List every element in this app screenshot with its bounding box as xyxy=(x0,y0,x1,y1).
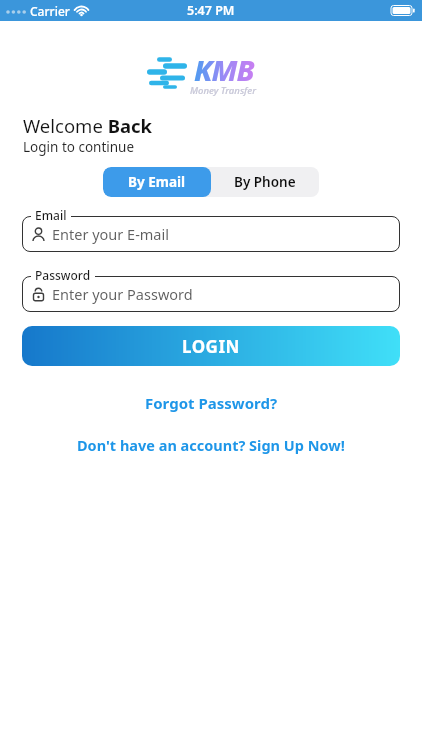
staticText: 5:47 PM xyxy=(187,2,235,19)
staticText: Welcome Back xyxy=(23,113,153,138)
staticText: Carrier xyxy=(30,3,70,19)
button[interactable]: Enter your E-mail xyxy=(22,216,400,252)
button[interactable]: Don't have an account? Sign Up Now! xyxy=(77,435,345,455)
button[interactable]: Forgot Password? xyxy=(145,393,278,413)
staticText: By Phone xyxy=(234,173,296,191)
staticText: LOGIN xyxy=(182,335,240,358)
staticText: KMB xyxy=(194,50,254,89)
staticText: By Email xyxy=(128,173,186,191)
staticText: Email xyxy=(35,207,67,223)
staticText: Password xyxy=(35,267,91,283)
staticText: Enter your E-mail xyxy=(52,224,169,244)
button[interactable]: By Phone xyxy=(211,167,319,197)
button[interactable]: By Email xyxy=(103,167,211,197)
staticText: Money Transfer xyxy=(190,84,257,97)
button[interactable]: Enter your Password xyxy=(22,276,400,312)
staticText: Enter your Password xyxy=(52,284,193,304)
staticText: Login to continue xyxy=(23,138,135,156)
button[interactable]: LOGIN xyxy=(22,326,400,366)
